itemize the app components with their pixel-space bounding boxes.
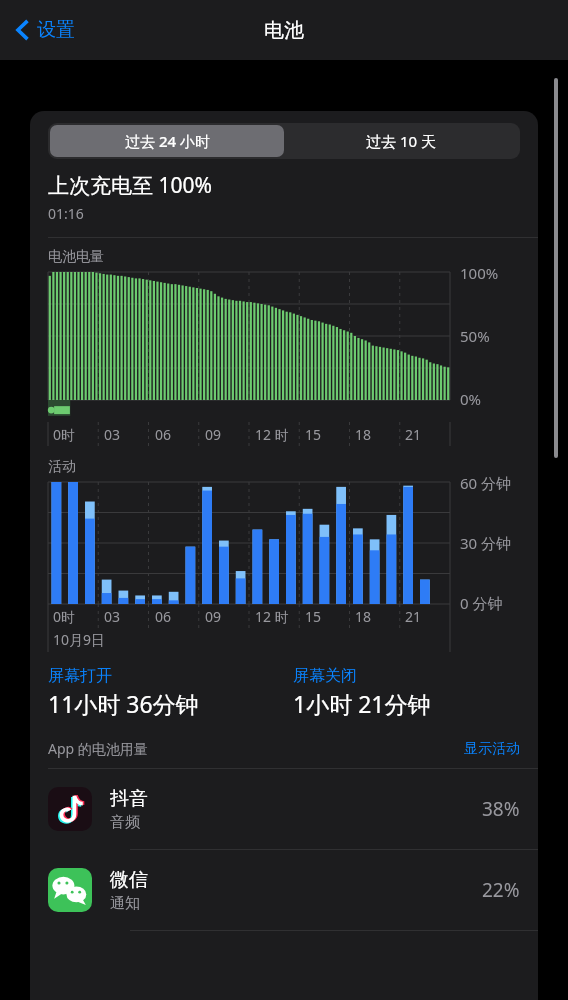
staticText: 38%: [482, 796, 520, 822]
staticText: 21: [405, 425, 422, 444]
staticText: 06: [155, 425, 172, 444]
button[interactable]: 过去 24 小时: [50, 125, 284, 157]
staticText: 0 分钟: [460, 593, 503, 613]
staticText: 过去 10 天: [366, 131, 436, 151]
staticText: 设置: [37, 18, 75, 42]
staticText: 0时: [53, 425, 76, 444]
staticText: 屏幕打开: [48, 666, 112, 686]
staticText: App 的电池用量: [48, 739, 148, 758]
staticText: 通知: [110, 894, 140, 913]
staticText: 12 时: [255, 607, 289, 626]
staticText: 显示活动: [464, 740, 520, 758]
button[interactable]: 显示活动: [464, 740, 520, 758]
staticText: 60 分钟: [460, 473, 512, 493]
staticText: 30 分钟: [460, 533, 512, 553]
button[interactable]: 设置: [10, 14, 81, 46]
staticText: 15: [305, 425, 322, 444]
staticText: 1小时 21分钟: [293, 688, 431, 719]
staticText: 01:16: [48, 204, 84, 223]
staticText: 音频: [110, 813, 140, 832]
staticText: 18: [355, 425, 372, 444]
staticText: 10月9日: [53, 630, 106, 649]
staticText: 上次充电至 100%: [48, 171, 212, 200]
button[interactable]: 微信: [30, 850, 538, 930]
staticText: 06: [155, 607, 172, 626]
staticText: 15: [305, 607, 322, 626]
staticText: 21: [405, 607, 422, 626]
staticText: 12 时: [255, 425, 289, 444]
staticText: 微信: [110, 868, 148, 892]
staticText: 11小时 36分钟: [48, 688, 199, 719]
staticText: 0%: [460, 389, 482, 409]
staticText: 0时: [53, 607, 76, 626]
staticText: 09: [205, 425, 222, 444]
staticText: 03: [104, 425, 121, 444]
staticText: 09: [205, 607, 222, 626]
staticText: 抖音: [110, 787, 148, 811]
staticText: 电池: [264, 18, 304, 43]
staticText: 活动: [48, 458, 76, 476]
button[interactable]: 抖音: [30, 769, 538, 849]
staticText: 屏幕关闭: [293, 666, 357, 686]
staticText: 100%: [460, 263, 499, 283]
staticText: 电池电量: [48, 248, 104, 266]
staticText: 03: [104, 607, 121, 626]
staticText: 过去 24 小时: [125, 131, 210, 151]
staticText: 18: [355, 607, 372, 626]
staticText: 50%: [460, 326, 490, 346]
button[interactable]: 过去 10 天: [284, 125, 518, 157]
staticText: 22%: [482, 877, 520, 903]
